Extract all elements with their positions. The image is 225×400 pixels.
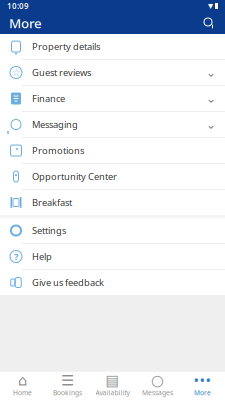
staticText: Opportunity Center bbox=[32, 170, 117, 183]
staticText: Bookings bbox=[53, 388, 82, 397]
staticText: Help bbox=[32, 250, 52, 263]
staticText: Give us feedback bbox=[32, 276, 104, 289]
staticText: Messaging bbox=[32, 118, 78, 131]
staticText: ☰ bbox=[61, 372, 74, 389]
staticText: ⌄ bbox=[206, 66, 216, 79]
button[interactable]: Opportunity Center bbox=[0, 164, 225, 189]
staticText: Promotions bbox=[32, 144, 84, 157]
staticText: Finance bbox=[32, 92, 65, 105]
button[interactable]: Finance bbox=[0, 86, 225, 111]
button[interactable]: ☆ bbox=[0, 60, 225, 85]
staticText: ☆ bbox=[12, 67, 20, 78]
staticText: ⌄ bbox=[206, 118, 216, 131]
staticText: More bbox=[9, 14, 42, 32]
button[interactable]: ☰ bbox=[45, 372, 90, 400]
staticText: Guest reviews bbox=[32, 66, 91, 79]
staticText: Breakfast bbox=[32, 196, 72, 209]
button[interactable]: ▤ bbox=[90, 372, 135, 400]
staticText: ⌂ bbox=[18, 372, 27, 389]
button[interactable]: Search bbox=[198, 12, 220, 34]
staticText: ▼ bbox=[208, 2, 213, 10]
button[interactable]: Property details bbox=[0, 34, 225, 59]
staticText: Home bbox=[13, 388, 32, 397]
button[interactable]: ••• bbox=[180, 372, 225, 400]
staticText: 10:09 bbox=[7, 1, 29, 11]
staticText: More bbox=[194, 388, 211, 397]
staticText: Messages bbox=[142, 388, 173, 397]
button[interactable]: ○ bbox=[135, 372, 180, 400]
button[interactable]: ⌂ bbox=[0, 372, 45, 400]
button[interactable]: Give us feedback bbox=[0, 270, 225, 295]
staticText: ⌄ bbox=[206, 92, 216, 105]
button[interactable]: Breakfast bbox=[0, 190, 225, 215]
button[interactable]: Messaging bbox=[0, 112, 225, 137]
staticText: ○ bbox=[151, 372, 164, 389]
staticText: ▤ bbox=[105, 372, 119, 389]
button[interactable]: ? bbox=[0, 244, 225, 269]
button[interactable]: Settings bbox=[0, 218, 225, 243]
staticText: ? bbox=[14, 250, 18, 263]
staticText: Availability bbox=[95, 388, 129, 397]
staticText: Property details bbox=[32, 40, 100, 53]
button[interactable]: Promotions bbox=[0, 138, 225, 163]
staticText: ••• bbox=[193, 371, 211, 390]
staticText: Settings bbox=[32, 224, 66, 237]
